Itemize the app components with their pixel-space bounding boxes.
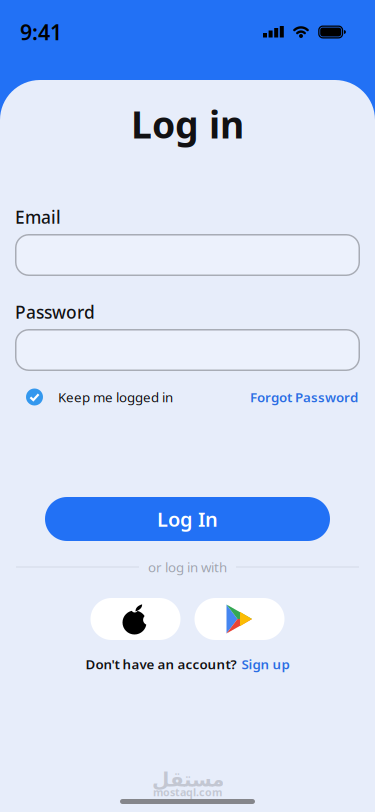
staticText: Log in <box>131 99 244 149</box>
staticText: Don't have an account? <box>85 655 236 673</box>
staticText: or log in with <box>148 558 227 576</box>
staticText: Log In <box>157 506 218 532</box>
button[interactable]: Keep me logged in <box>26 388 173 406</box>
staticText: mostaql.com <box>153 785 222 799</box>
button[interactable]: Log in with Google Play <box>194 598 284 640</box>
button[interactable]: Email <box>15 234 360 276</box>
staticText: Sign up <box>241 655 289 673</box>
button[interactable]: Sign up <box>241 655 289 673</box>
staticText: Password <box>15 300 95 323</box>
button[interactable]: Forgot Password <box>250 388 358 406</box>
staticText: Email <box>15 205 61 228</box>
staticText: 9:41 <box>20 18 62 46</box>
button[interactable]: Log in with Apple <box>90 598 180 640</box>
button[interactable]: Password <box>15 329 360 371</box>
staticText: Forgot Password <box>250 388 358 406</box>
button[interactable]: Log In <box>45 497 330 541</box>
staticText: Keep me logged in <box>58 388 173 406</box>
staticText: مستقل <box>151 768 223 791</box>
